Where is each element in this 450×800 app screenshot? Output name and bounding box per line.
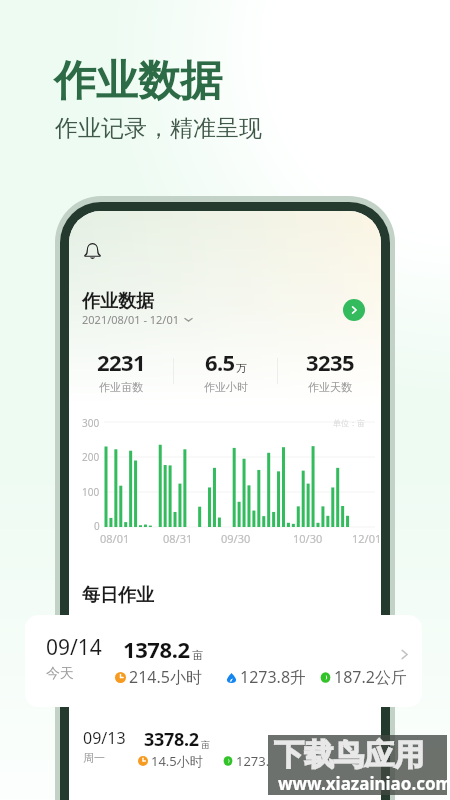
- staticText: 1273.8升: [240, 666, 307, 688]
- staticText: 300: [82, 416, 100, 430]
- staticText: 08/31: [163, 531, 193, 546]
- staticText: 1273.: [236, 752, 270, 770]
- staticText: 09/13: [83, 727, 126, 749]
- staticText: 作业数据: [82, 290, 154, 313]
- button[interactable]: 09/14: [25, 615, 422, 707]
- staticText: 200: [82, 450, 100, 464]
- staticText: 0: [94, 519, 100, 533]
- staticText: 2021/08/01 - 12/01: [82, 312, 180, 327]
- staticText: 1378.2: [123, 634, 190, 664]
- staticText: 作业天数: [308, 380, 352, 394]
- staticText: 3235: [306, 347, 354, 377]
- staticText: 亩: [192, 648, 203, 662]
- staticText: 12/01: [352, 531, 381, 546]
- staticText: 亩: [201, 739, 210, 750]
- staticText: 6.5: [205, 347, 235, 377]
- staticText: www.xiazainiao.com: [278, 772, 450, 795]
- staticText: 万: [236, 361, 247, 375]
- staticText: 08/01: [100, 531, 130, 546]
- staticText: 作业数据: [54, 55, 222, 108]
- staticText: 214.5小时: [129, 666, 202, 688]
- staticText: 作业小时: [204, 380, 248, 394]
- staticText: 下载鸟应用: [274, 736, 424, 774]
- button[interactable]: 09/13: [70, 718, 380, 800]
- button[interactable]: Notifications: [80, 239, 104, 263]
- staticText: 周一: [83, 751, 105, 765]
- staticText: 作业记录，精准呈现: [55, 114, 262, 143]
- staticText: 10/30: [293, 531, 323, 546]
- staticText: 作业亩数: [99, 380, 143, 394]
- staticText: 2231: [97, 347, 145, 377]
- staticText: 3378.2: [144, 727, 199, 752]
- staticText: 单位：亩: [333, 418, 365, 428]
- staticText: 100: [82, 485, 100, 499]
- staticText: 187.2公斤: [334, 666, 407, 688]
- staticText: 14.5小时: [151, 752, 203, 770]
- staticText: 今天: [46, 665, 74, 683]
- button[interactable]: View details: [343, 299, 365, 321]
- staticText: 09/14: [46, 633, 102, 662]
- staticText: 09/30: [221, 531, 251, 546]
- staticText: 每日作业: [82, 584, 154, 607]
